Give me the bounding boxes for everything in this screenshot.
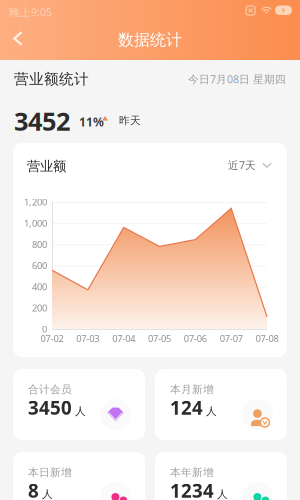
staticText: 600 <box>32 259 47 272</box>
staticText: 11% <box>79 114 104 130</box>
staticText: 07-04 <box>112 332 135 345</box>
staticText: 昨天 <box>119 114 141 127</box>
staticText: 0 <box>42 323 47 335</box>
staticText: 1,000 <box>24 217 47 229</box>
button[interactable]: 返回 <box>0 22 40 58</box>
staticText: 营业额统计 <box>14 70 89 88</box>
staticText: 合计会员 <box>28 383 72 396</box>
staticText: 近7天 <box>228 158 256 172</box>
button[interactable]: 本月新增 <box>155 369 287 440</box>
staticText: 本日新增 <box>28 466 72 479</box>
staticText: 8 <box>28 478 39 500</box>
staticText: 3450 <box>28 395 72 420</box>
staticText: 数据统计 <box>118 30 182 50</box>
staticText: 07-08 <box>255 332 278 345</box>
staticText: 人 <box>75 404 86 418</box>
staticText: 07-03 <box>76 332 99 345</box>
button[interactable]: 本日新增 <box>13 452 145 500</box>
staticText: 今日7月08日 星期四 <box>188 72 286 86</box>
staticText: 营业额 <box>27 158 66 174</box>
staticText: 07-02 <box>40 332 63 345</box>
staticText: 07-07 <box>220 332 243 345</box>
staticText: 200 <box>32 302 47 314</box>
staticText: 人 <box>217 487 228 500</box>
staticText: 1234 <box>170 478 214 500</box>
staticText: 400 <box>32 280 47 293</box>
staticText: 人 <box>206 404 217 418</box>
staticText: 124 <box>170 395 203 420</box>
staticText: 3452 <box>14 104 70 138</box>
staticText: 07-06 <box>184 332 207 345</box>
staticText: 本年新增 <box>170 466 214 479</box>
staticText: 晚上9:05 <box>9 5 52 19</box>
button[interactable]: 本年新增 <box>155 452 287 500</box>
staticText: 人 <box>42 487 53 500</box>
button[interactable]: 合计会员 <box>13 369 145 440</box>
staticText: 本月新增 <box>170 383 214 396</box>
button[interactable]: 近7天 <box>216 149 284 181</box>
staticText: 1,200 <box>24 196 47 208</box>
staticText: 800 <box>32 238 47 250</box>
staticText: 07-05 <box>148 332 171 345</box>
